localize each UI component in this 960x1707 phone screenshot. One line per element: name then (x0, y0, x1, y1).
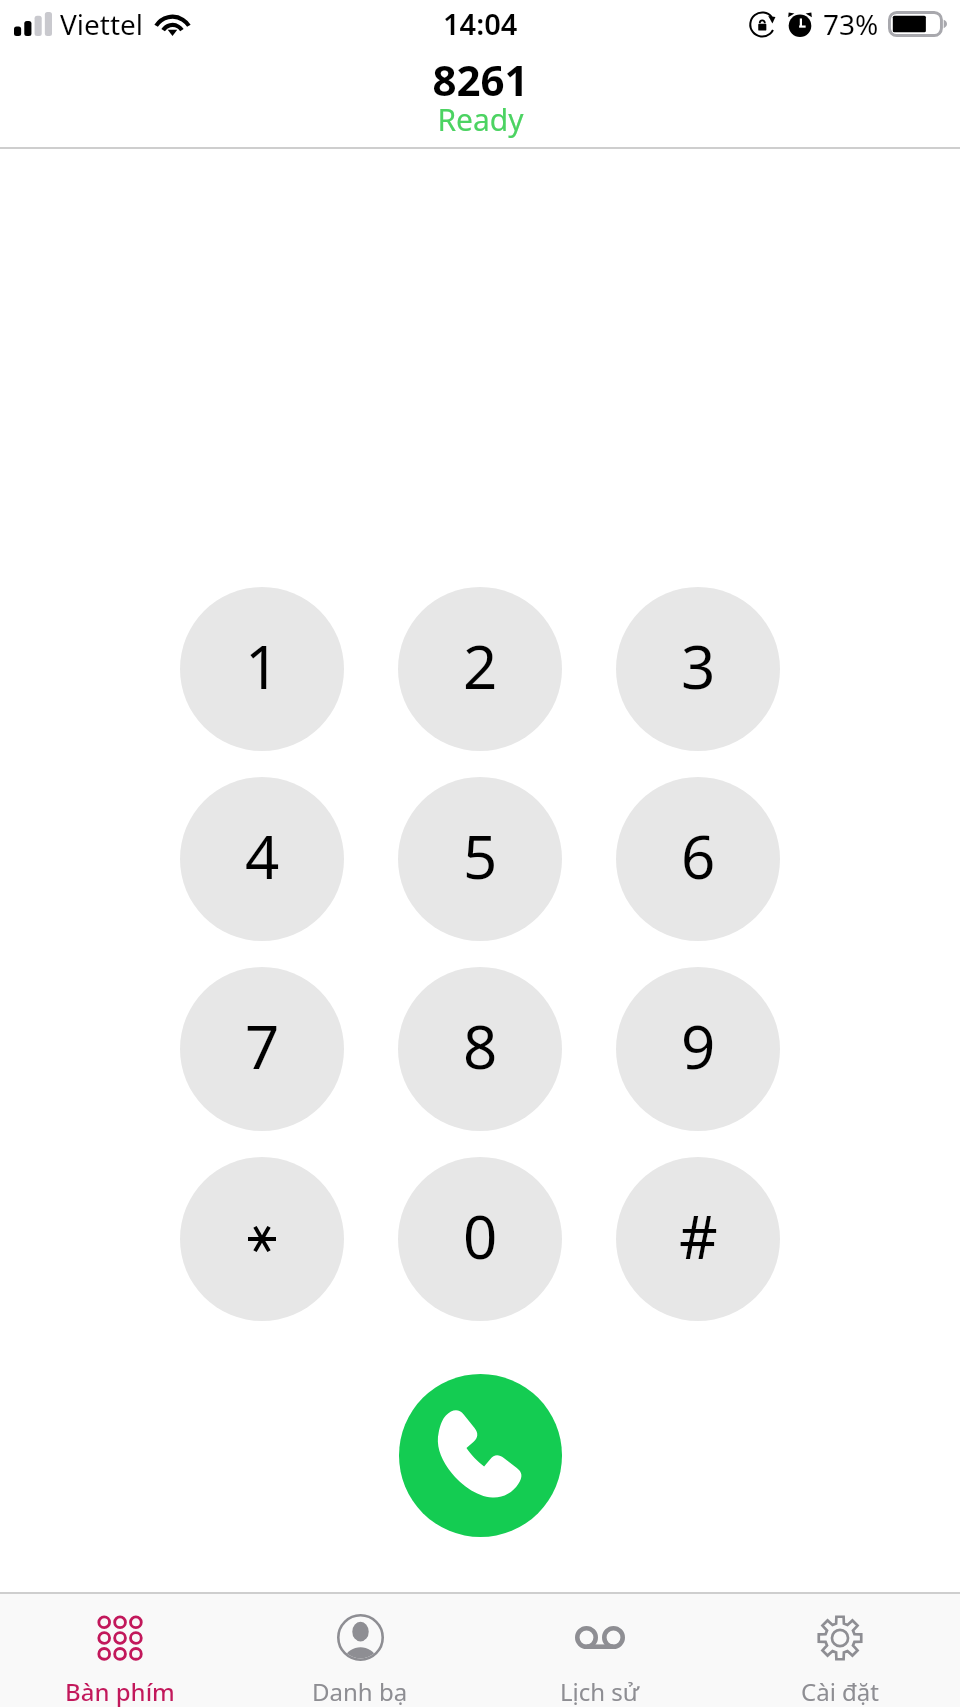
button[interactable]: Call (399, 1374, 562, 1537)
button[interactable]: 4 (180, 777, 344, 941)
button[interactable]: 7 (180, 967, 344, 1131)
button[interactable]: 2 (398, 587, 562, 751)
staticText: 1 (245, 625, 280, 707)
button[interactable]: Lịch sử (480, 1594, 720, 1707)
button[interactable]: 1 (180, 587, 344, 751)
staticText: 73% (823, 5, 879, 43)
staticText: # (679, 1195, 718, 1277)
button[interactable]: 0 (398, 1157, 562, 1321)
staticText: Viettel (60, 5, 144, 43)
button[interactable]: # (616, 1157, 780, 1321)
button[interactable]: 3 (616, 587, 780, 751)
button[interactable]: Danh bạ (240, 1594, 480, 1707)
staticText: Ready (437, 99, 524, 140)
staticText: Danh bạ (312, 1675, 408, 1707)
staticText: 8261 (432, 51, 529, 108)
staticText: Lịch sử (560, 1675, 640, 1707)
staticText: Bàn phím (65, 1675, 175, 1707)
staticText: 5 (463, 815, 498, 897)
button[interactable]: Star (180, 1157, 344, 1321)
staticText: 7 (245, 1005, 280, 1087)
staticText: 9 (681, 1005, 716, 1087)
button[interactable]: 5 (398, 777, 562, 941)
staticText: 4 (245, 815, 280, 897)
staticText: 0 (463, 1195, 498, 1277)
staticText: 14:04 (443, 4, 518, 43)
button[interactable]: Cài đặt (720, 1594, 960, 1707)
staticText: 6 (681, 815, 716, 897)
button[interactable]: 9 (616, 967, 780, 1131)
button[interactable]: 8 (398, 967, 562, 1131)
staticText: 8 (463, 1005, 498, 1087)
button[interactable]: 6 (616, 777, 780, 941)
button[interactable]: Bàn phím (0, 1594, 240, 1707)
staticText: 2 (463, 625, 498, 707)
staticText: Cài đặt (801, 1675, 879, 1707)
staticText: 3 (681, 625, 716, 707)
